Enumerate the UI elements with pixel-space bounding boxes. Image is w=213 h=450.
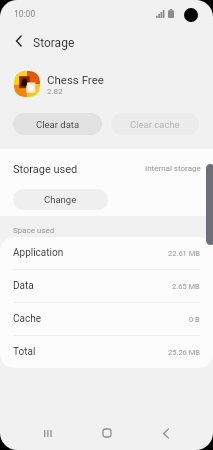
button[interactable]: Back bbox=[7, 29, 31, 53]
staticText: 10:00 bbox=[14, 9, 36, 19]
staticText: Data bbox=[13, 280, 34, 292]
staticText: 2.65 MB bbox=[172, 282, 200, 291]
staticText: Chess Free bbox=[47, 73, 104, 86]
staticText: Storage bbox=[33, 36, 75, 50]
staticText: Change bbox=[44, 194, 77, 205]
staticText: 25.26 MB bbox=[168, 348, 200, 357]
button[interactable]: Total bbox=[0, 336, 213, 368]
staticText: Internal storage bbox=[145, 164, 201, 173]
staticText: 22.61 MB bbox=[168, 249, 200, 258]
button[interactable]: Change bbox=[13, 189, 108, 210]
staticText: Clear data bbox=[36, 119, 80, 130]
staticText: Cache bbox=[13, 313, 41, 325]
staticText: Space used bbox=[13, 226, 55, 235]
button[interactable]: Back bbox=[151, 418, 181, 448]
staticText: 2.82 bbox=[47, 87, 63, 96]
staticText: Storage used bbox=[13, 163, 78, 176]
staticText: 0 B bbox=[189, 315, 200, 324]
button[interactable]: Application bbox=[0, 237, 213, 270]
button[interactable]: Cache bbox=[0, 303, 213, 336]
button[interactable]: Home bbox=[92, 418, 122, 448]
staticText: Clear cache bbox=[130, 119, 180, 130]
staticText: Application bbox=[13, 247, 64, 259]
button[interactable]: Clear data bbox=[13, 113, 102, 135]
button[interactable]: Clear cache bbox=[111, 113, 199, 135]
button[interactable]: Data bbox=[0, 270, 213, 303]
button[interactable]: Recent apps bbox=[33, 418, 63, 448]
staticText: Total bbox=[13, 346, 36, 358]
